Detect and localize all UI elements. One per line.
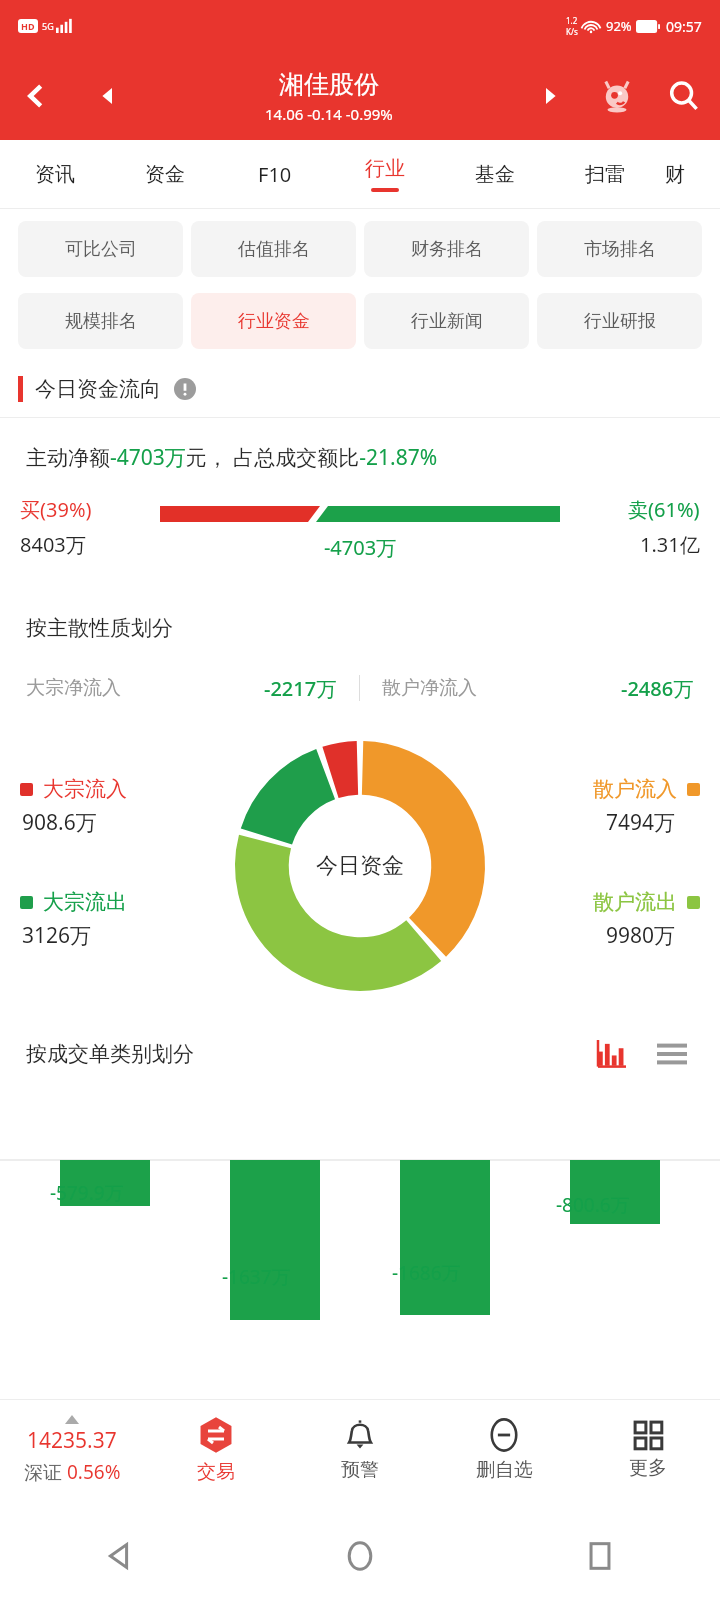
staticText: 今日资金流向	[35, 376, 161, 402]
button[interactable]: 预警	[288, 1400, 432, 1500]
button[interactable]: Back	[0, 1500, 240, 1612]
button[interactable]: 大宗流入	[20, 776, 127, 837]
staticText: 财务排名	[411, 238, 483, 261]
staticText: 大宗流出	[43, 889, 127, 915]
staticText: 1.31亿	[640, 531, 700, 558]
button[interactable]: 交易	[144, 1400, 288, 1500]
button[interactable]: 散户流入	[593, 776, 700, 837]
button[interactable]: 行业研报	[537, 293, 702, 349]
staticText: 基金	[475, 162, 515, 187]
staticText: 主动净额-4703万元， 占总成交额比-21.87%	[26, 443, 438, 472]
staticText: 行业研报	[584, 310, 656, 333]
staticText: -4703万	[160, 534, 560, 561]
staticText: 交易	[197, 1460, 235, 1484]
staticText: -800.6万	[556, 1192, 630, 1218]
button[interactable]: Search	[648, 52, 720, 140]
button[interactable]: 规模排名	[18, 293, 183, 349]
staticText: -2486万	[621, 675, 694, 702]
button[interactable]: 基金	[440, 140, 550, 208]
staticText: 市场排名	[584, 238, 656, 261]
button[interactable]: List view	[650, 1032, 694, 1076]
staticText: 7494万	[606, 808, 676, 837]
staticText: 8403万	[20, 531, 86, 558]
staticText: 大宗流入	[43, 776, 127, 802]
staticText: 湘佳股份	[279, 69, 379, 100]
staticText: 更多	[629, 1456, 667, 1480]
button[interactable]: 大宗流出	[20, 889, 127, 950]
staticText: 按主散性质划分	[26, 615, 173, 641]
button[interactable]: Info	[173, 377, 197, 401]
staticText: 92%	[606, 17, 632, 35]
button[interactable]: 资讯	[0, 140, 110, 208]
button[interactable]: Bar chart view	[590, 1032, 634, 1076]
button[interactable]: 资金	[110, 140, 220, 208]
button[interactable]: 可比公司	[18, 221, 183, 277]
button[interactable]: 行业	[330, 140, 440, 208]
button[interactable]: Previous stock	[72, 52, 144, 140]
button[interactable]: 散户流出	[593, 889, 700, 950]
staticText: 行业新闻	[411, 310, 483, 333]
button[interactable]: 市场排名	[537, 221, 702, 277]
staticText: 深证 0.56%	[24, 1459, 121, 1485]
staticText: 资金	[145, 162, 185, 187]
staticText: 14.06 -0.14 -0.99%	[265, 104, 393, 124]
staticText: -1686万	[392, 1260, 461, 1286]
staticText: 9980万	[606, 921, 676, 950]
button[interactable]: Recent apps	[480, 1500, 720, 1612]
button[interactable]: 财	[660, 140, 690, 208]
staticText: 可比公司	[65, 238, 137, 261]
button[interactable]: 财务排名	[364, 221, 529, 277]
button[interactable]: 湘佳股份	[144, 69, 514, 124]
staticText: -1637万	[222, 1264, 291, 1290]
staticText: 散户流出	[593, 889, 677, 915]
staticText: 5G	[42, 20, 54, 32]
staticText: 扫雷	[585, 162, 625, 187]
staticText: 散户流入	[593, 776, 677, 802]
staticText: 删自选	[476, 1458, 533, 1482]
staticText: 买(39%)	[20, 496, 92, 523]
staticText: -579.9万	[50, 1180, 124, 1206]
staticText: K/s	[566, 26, 578, 37]
staticText: -2217万	[264, 675, 337, 702]
staticText: 今日资金	[316, 852, 404, 880]
staticText: 14235.37	[27, 1426, 117, 1455]
staticText: F10	[258, 161, 292, 188]
staticText: 按成交单类别划分	[26, 1041, 194, 1067]
button[interactable]: Back	[0, 52, 72, 140]
staticText: 预警	[341, 1458, 379, 1482]
staticText: 卖(61%)	[628, 496, 700, 523]
button[interactable]: 14235.37	[0, 1400, 144, 1500]
button[interactable]: 更多	[576, 1400, 720, 1500]
button[interactable]: 估值排名	[191, 221, 356, 277]
button[interactable]: 扫雷	[550, 140, 660, 208]
button[interactable]: 行业新闻	[364, 293, 529, 349]
staticText: 3126万	[22, 921, 92, 950]
staticText: 行业资金	[238, 310, 310, 333]
staticText: 散户净流入	[382, 676, 477, 700]
staticText: 规模排名	[65, 310, 137, 333]
staticText: 908.6万	[22, 808, 97, 837]
staticText: 财	[665, 162, 685, 187]
button[interactable]: 行业资金	[191, 293, 356, 349]
staticText: 09:57	[666, 17, 702, 36]
button[interactable]: Home	[240, 1500, 480, 1612]
button[interactable]: F10	[220, 140, 330, 208]
staticText: 大宗净流入	[26, 676, 121, 700]
staticText: 行业	[365, 156, 405, 181]
staticText: 资讯	[35, 162, 75, 187]
button[interactable]: Assistant	[586, 52, 648, 140]
staticText: 1.2	[566, 15, 578, 26]
staticText: HD	[21, 20, 35, 32]
button[interactable]: 删自选	[432, 1400, 576, 1500]
button[interactable]: Next stock	[514, 52, 586, 140]
staticText: 估值排名	[238, 238, 310, 261]
